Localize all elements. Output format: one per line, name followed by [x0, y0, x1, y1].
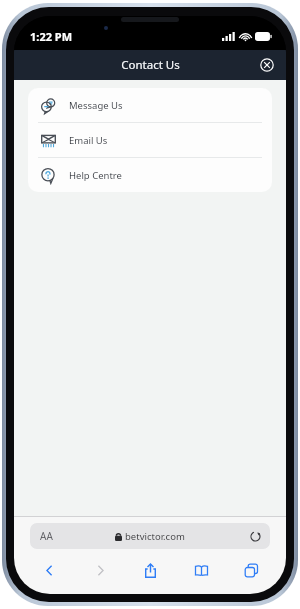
button[interactable]: Close — [256, 54, 278, 76]
button[interactable]: Share — [133, 557, 167, 583]
button[interactable]: Tabs — [234, 557, 268, 583]
button[interactable]: Help Centre — [28, 158, 272, 192]
button[interactable]: Reload — [248, 529, 262, 543]
staticText: Email Us — [69, 134, 108, 147]
button[interactable]: Forward — [83, 557, 117, 583]
button[interactable]: AA — [30, 523, 270, 549]
staticText: betvictor.com — [125, 530, 185, 543]
staticText: AA — [40, 529, 53, 543]
button[interactable]: Message Us — [28, 88, 272, 122]
staticText: Help Centre — [69, 169, 122, 182]
staticText: 1:22 PM — [30, 29, 73, 44]
staticText: Message Us — [69, 99, 123, 112]
staticText: Contact Us — [121, 57, 180, 73]
button[interactable]: Email Us — [28, 123, 272, 157]
button[interactable]: Bookmarks — [184, 557, 218, 583]
button[interactable]: Back — [32, 557, 66, 583]
